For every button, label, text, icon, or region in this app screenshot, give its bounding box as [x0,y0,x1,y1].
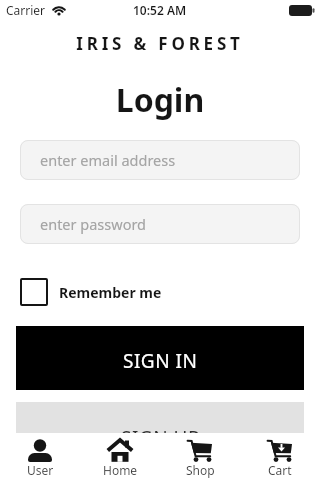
staticText: SIGN IN [123,348,198,374]
staticText: Home [103,462,138,478]
staticText: enter password [40,214,147,234]
staticText: User [27,462,54,478]
staticText: Carrier [6,2,46,18]
staticText: Shop [186,462,215,478]
staticText: IRIS & FOREST [0,32,320,55]
staticText: enter email address [40,150,176,170]
staticText: Login [0,78,320,122]
staticText: 10:52 AM [133,2,187,18]
staticText: SIGN UP [121,425,200,451]
staticText: Cart [268,462,292,478]
staticText: Remember me [59,283,162,302]
